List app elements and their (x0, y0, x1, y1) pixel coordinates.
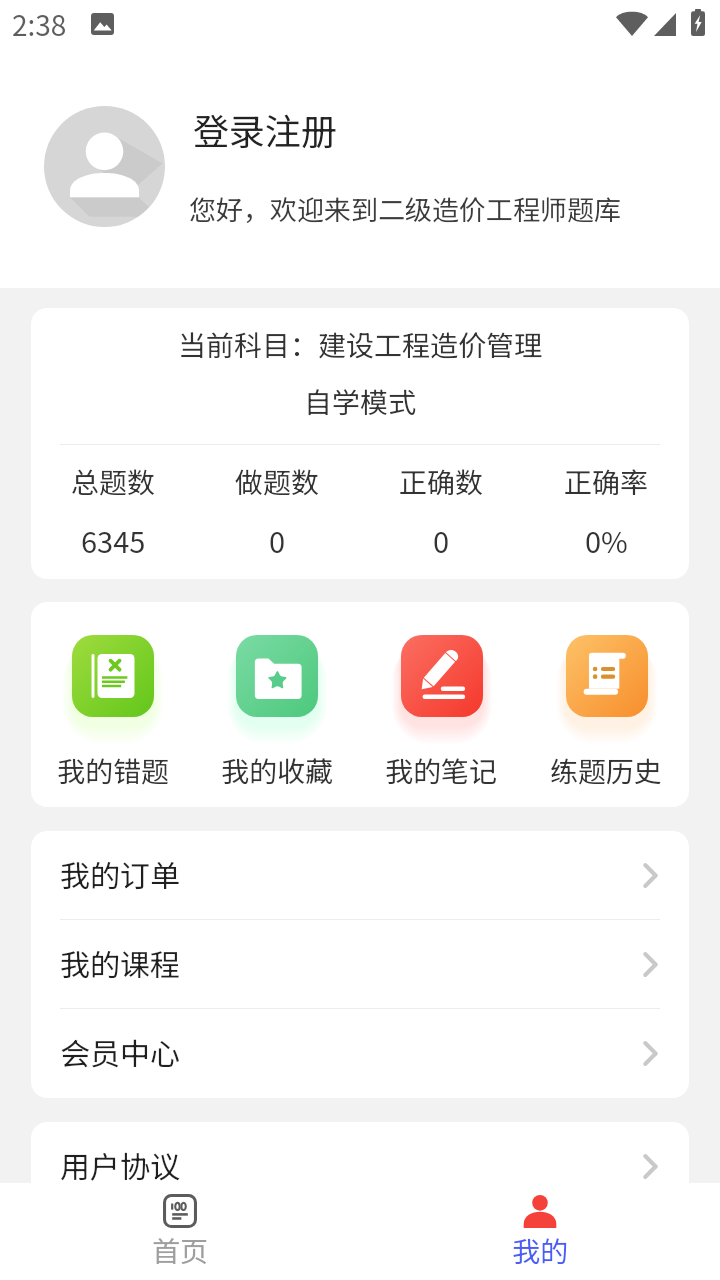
staticText: 做题数 (235, 461, 320, 502)
staticText: 我的订单 (60, 852, 643, 895)
staticText: 0 (269, 519, 286, 561)
button[interactable]: 登录注册 (0, 70, 720, 288)
staticText: 总题数 (71, 461, 156, 502)
other: Profile tab (523, 1194, 557, 1228)
staticText: 0% (585, 519, 628, 561)
button[interactable]: 我的错题 (31, 635, 195, 791)
button[interactable]: 我的收藏 (195, 635, 359, 791)
staticText: 首页 (152, 1230, 209, 1271)
button[interactable]: 练题历史 (524, 635, 689, 791)
staticText: 正确数 (399, 461, 484, 502)
staticText: 自学模式 (31, 381, 689, 422)
staticText: 我的 (512, 1230, 569, 1271)
button[interactable]: 我的订单 (31, 831, 689, 920)
staticText: 用户协议 (60, 1143, 643, 1183)
staticText: 会员中心 (60, 1030, 643, 1073)
other: Home tab (163, 1194, 197, 1228)
staticText: 正确率 (564, 461, 649, 502)
staticText: 0 (433, 519, 450, 561)
staticText: 登录注册 (193, 103, 338, 155)
staticText: 练题历史 (550, 750, 663, 791)
button[interactable]: 会员中心 (31, 1009, 689, 1098)
button[interactable]: 用户协议 (31, 1122, 689, 1183)
button[interactable]: Home tab (0, 1183, 360, 1280)
staticText: 6345 (81, 519, 146, 561)
staticText: 我的笔记 (385, 750, 498, 791)
button[interactable]: 我的笔记 (359, 635, 524, 791)
staticText: 您好，欢迎来到二级造价工程师题库 (189, 189, 621, 228)
staticText: 当前科目：建设工程造价管理 (31, 324, 689, 365)
staticText: 我的课程 (60, 941, 643, 984)
button[interactable]: Profile tab (360, 1183, 720, 1280)
button[interactable]: 我的课程 (31, 920, 689, 1009)
staticText: 2:38 (12, 4, 67, 45)
staticText: 我的收藏 (221, 750, 334, 791)
staticText: 我的错题 (57, 750, 170, 791)
